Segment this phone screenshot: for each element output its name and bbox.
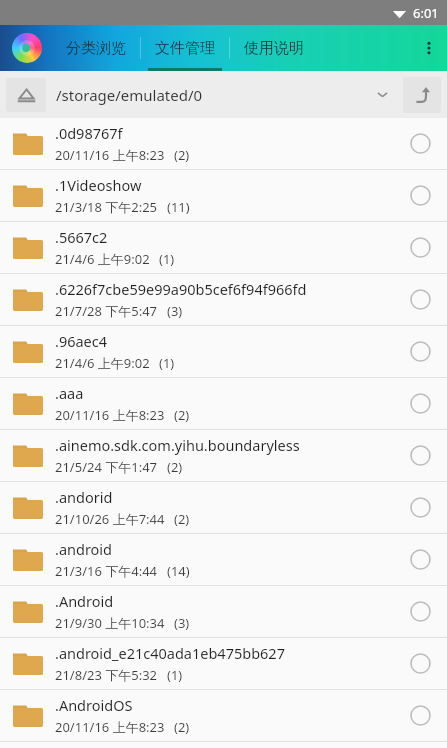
staticText: 21/3/16 下午4:44: [55, 562, 158, 580]
button[interactable]: 分类浏览: [52, 25, 140, 71]
staticText: .ainemo.sdk.com.yihu.boundaryless: [55, 435, 300, 455]
button[interactable]: Select .0d98767f: [393, 118, 447, 169]
staticText: /storage/emulated/0: [56, 85, 203, 105]
staticText: .android: [55, 539, 113, 559]
button[interactable]: Select .android_e21c40ada1eb475bb627: [393, 638, 447, 689]
button[interactable]: Select .AndroidOS: [393, 690, 447, 741]
button[interactable]: Select .1Videoshow: [393, 170, 447, 221]
staticText: .AndroidOS: [55, 695, 133, 715]
button[interactable]: /storage/emulated/0: [56, 71, 403, 118]
staticText: 21/9/30 上午10:34: [55, 614, 165, 632]
staticText: .aaa: [55, 383, 84, 403]
staticText: 21/7/28 下午5:47: [55, 302, 158, 320]
staticText: 文件管理: [155, 39, 215, 58]
button[interactable]: Home: [6, 78, 46, 112]
staticText: (2): [174, 718, 190, 736]
button[interactable]: .6226f7cbe59e99a90b5cef6f94f966fd: [0, 274, 447, 325]
staticText: 21/5/24 下午1:47: [55, 458, 158, 476]
staticText: 分类浏览: [66, 39, 126, 58]
staticText: 6:01: [413, 4, 439, 22]
button[interactable]: Select .Android: [393, 586, 447, 637]
button[interactable]: .Android: [0, 586, 447, 637]
staticText: (3): [167, 302, 183, 320]
staticText: .6226f7cbe59e99a90b5cef6f94f966fd: [55, 279, 307, 299]
button[interactable]: Select .aaa: [393, 378, 447, 429]
staticText: .0d98767f: [55, 123, 123, 143]
staticText: (14): [167, 562, 190, 580]
staticText: (11): [167, 198, 190, 216]
staticText: 21/4/6 上午9:02: [55, 354, 150, 372]
button[interactable]: Select .ainemo.sdk.com.yihu.boundaryless: [393, 430, 447, 481]
button[interactable]: .android_e21c40ada1eb475bb627: [0, 638, 447, 689]
button[interactable]: .5667c2: [0, 222, 447, 273]
button[interactable]: Select .96aec4: [393, 326, 447, 377]
staticText: .andorid: [55, 487, 113, 507]
button[interactable]: .AndroidOS: [0, 690, 447, 741]
staticText: 20/11/16 上午8:23: [55, 718, 165, 736]
staticText: .96aec4: [55, 331, 108, 351]
button[interactable]: .aaa: [0, 378, 447, 429]
staticText: 21/3/18 下午2:25: [55, 198, 158, 216]
staticText: (2): [174, 146, 190, 164]
button[interactable]: .1Videoshow: [0, 170, 447, 221]
staticText: .5667c2: [55, 227, 108, 247]
staticText: 20/11/16 上午8:23: [55, 146, 165, 164]
button[interactable]: .0d98767f: [0, 118, 447, 169]
staticText: (1): [167, 666, 183, 684]
staticText: (2): [167, 458, 183, 476]
button[interactable]: .ainemo.sdk.com.yihu.boundaryless: [0, 430, 447, 481]
button[interactable]: 文件管理: [141, 25, 229, 71]
button[interactable]: 使用说明: [230, 25, 318, 71]
button[interactable]: Select .andorid: [393, 482, 447, 533]
button[interactable]: Select .android: [393, 534, 447, 585]
staticText: .1Videoshow: [55, 175, 142, 195]
staticText: (2): [174, 510, 190, 528]
staticText: 21/10/26 上午7:44: [55, 510, 165, 528]
staticText: (2): [174, 406, 190, 424]
button[interactable]: More options: [411, 25, 447, 71]
staticText: 21/8/23 下午5:32: [55, 666, 158, 684]
button[interactable]: .android: [0, 534, 447, 585]
button[interactable]: .andorid: [0, 482, 447, 533]
staticText: 使用说明: [244, 39, 304, 58]
staticText: .android_e21c40ada1eb475bb627: [55, 643, 285, 663]
button[interactable]: Select .5667c2: [393, 222, 447, 273]
staticText: 20/11/16 上午8:23: [55, 406, 165, 424]
staticText: 21/4/6 上午9:02: [55, 250, 150, 268]
staticText: (1): [159, 354, 175, 372]
other: App logo: [12, 33, 42, 63]
button[interactable]: .96aec4: [0, 326, 447, 377]
button[interactable]: Select .6226f7cbe59e99a90b5cef6f94f966fd: [393, 274, 447, 325]
button[interactable]: Up one level: [403, 77, 441, 113]
staticText: (3): [174, 614, 190, 632]
staticText: (1): [159, 250, 175, 268]
staticText: .Android: [55, 591, 114, 611]
